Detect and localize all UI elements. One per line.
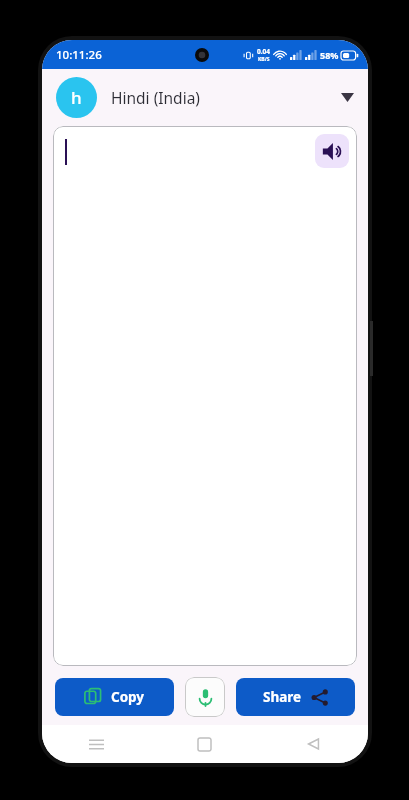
button[interactable]: h [42, 69, 368, 126]
staticText: KB/S [258, 56, 270, 63]
button[interactable]: Voice input [185, 677, 225, 717]
button[interactable]: Copy [55, 678, 174, 716]
button[interactable]: Speak text [53, 126, 357, 666]
button[interactable]: Back [259, 725, 368, 763]
button[interactable]: Speak text [315, 134, 349, 168]
staticText: 58% [320, 49, 339, 61]
staticText: Copy [111, 688, 145, 706]
staticText: Hindi (India) [111, 87, 200, 108]
staticText: 0.04 [257, 47, 270, 56]
staticText: h [71, 86, 82, 109]
button[interactable]: Share [236, 678, 355, 716]
button[interactable]: Recents [42, 725, 150, 763]
button[interactable]: Home [150, 725, 259, 763]
staticText: 10:11:26 [56, 47, 102, 63]
staticText: Share [263, 688, 302, 706]
